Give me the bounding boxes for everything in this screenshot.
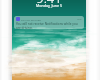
staticText: Monday, June 5 [36, 3, 62, 8]
staticText: DO NOT DISTURB [21, 18, 41, 21]
button[interactable]: DO NOT DISTURB [14, 16, 84, 29]
staticText: 9:41 [36, 0, 62, 7]
staticText: now [77, 18, 82, 21]
staticText: You will not receive Notifications while… [16, 22, 82, 29]
